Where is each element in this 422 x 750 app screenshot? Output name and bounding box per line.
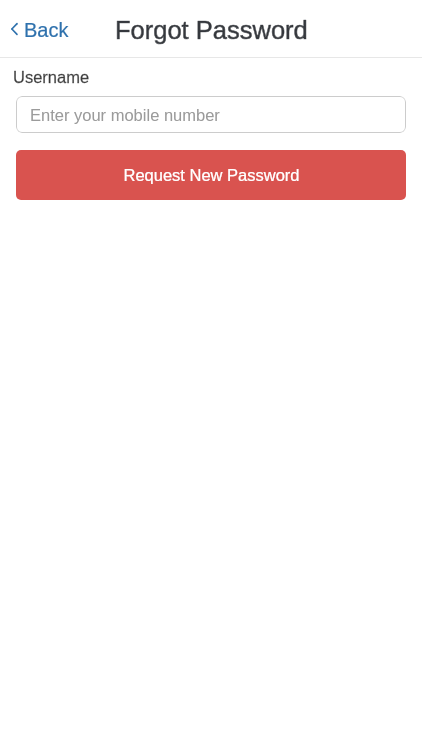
staticText: Username — [13, 68, 90, 86]
button[interactable]: Enter your mobile number — [16, 96, 406, 133]
staticText: Back — [24, 19, 69, 41]
button[interactable]: Request New Password — [16, 150, 406, 200]
staticText: Enter your mobile number — [30, 106, 220, 124]
button[interactable]: Back — [0, 8, 83, 52]
staticText: Back — [24, 19, 69, 41]
staticText: Forgot Password — [115, 16, 308, 44]
staticText: Request New Password — [123, 166, 300, 184]
staticText: Username — [13, 68, 90, 86]
staticText: Forgot Password — [115, 16, 308, 44]
